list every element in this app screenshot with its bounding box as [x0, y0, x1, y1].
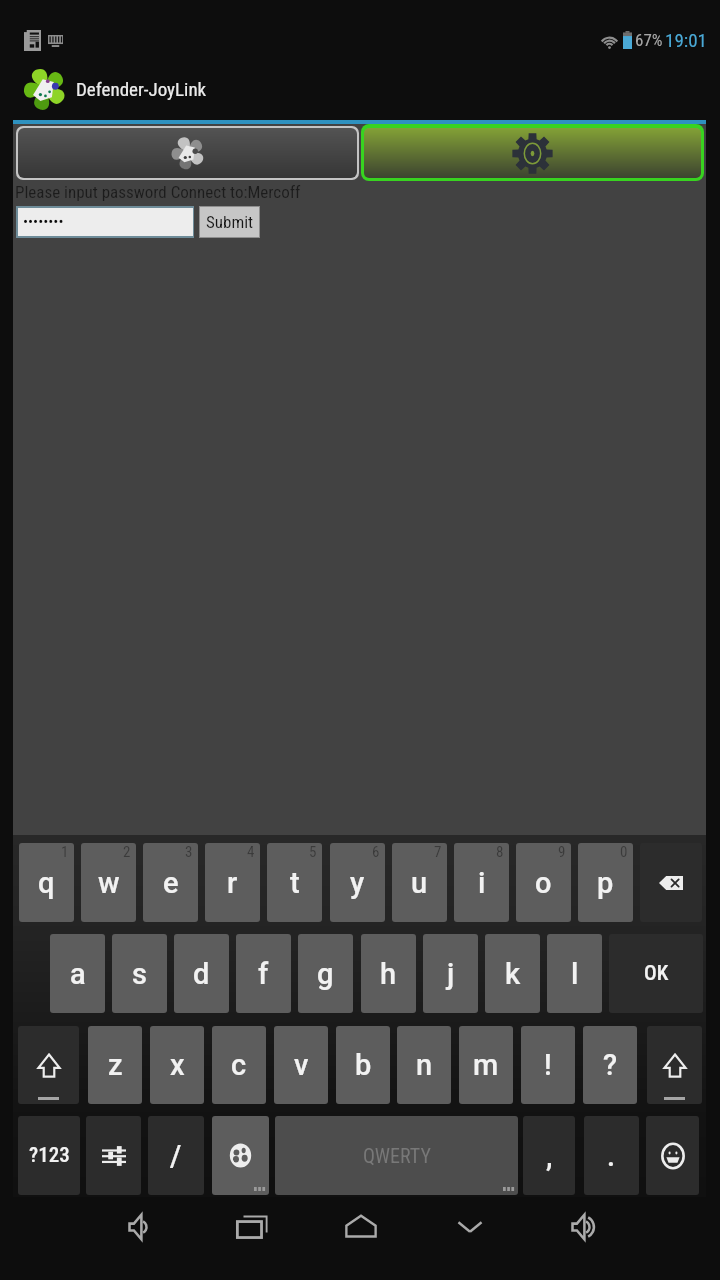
staticText: h — [380, 957, 397, 991]
button[interactable]: ? — [583, 1026, 637, 1104]
staticText: 67% — [635, 30, 663, 50]
button[interactable]: c — [212, 1026, 266, 1104]
button[interactable]: OK — [609, 934, 703, 1013]
button[interactable]: Change language — [212, 1116, 269, 1195]
staticText: t — [290, 866, 300, 900]
staticText: g — [317, 957, 334, 991]
staticText: l — [571, 957, 579, 991]
button[interactable]: q — [19, 843, 74, 922]
staticText: v — [294, 1048, 309, 1082]
button[interactable]: . — [584, 1116, 639, 1195]
staticText: r — [227, 866, 238, 900]
button[interactable]: Hide keyboard — [416, 1197, 524, 1263]
button[interactable]: d — [174, 934, 229, 1013]
staticText: , — [546, 1139, 553, 1173]
staticText: q — [38, 866, 55, 900]
button[interactable]: Recent apps — [198, 1197, 306, 1263]
staticText: QWERTY — [363, 1144, 431, 1167]
button[interactable]: p — [578, 843, 633, 922]
staticText: c — [231, 1048, 247, 1082]
button[interactable]: , — [523, 1116, 575, 1195]
button[interactable]: g — [298, 934, 353, 1013]
staticText: . — [607, 1139, 616, 1173]
staticText: Submit — [206, 212, 254, 232]
staticText: u — [411, 866, 428, 900]
button[interactable]: r — [205, 843, 260, 922]
staticText: ? — [603, 1048, 618, 1082]
button[interactable]: h — [361, 934, 416, 1013]
staticText: 19:01 — [665, 29, 707, 51]
button[interactable]: •••••••• — [18, 208, 193, 236]
staticText: p — [597, 866, 614, 900]
button[interactable]: w — [81, 843, 136, 922]
staticText: f — [258, 957, 269, 991]
staticText: m — [473, 1048, 499, 1082]
staticText: o — [535, 866, 552, 900]
button[interactable]: Device — [18, 128, 357, 178]
staticText: 7 — [434, 843, 442, 861]
button[interactable]: QWERTY — [275, 1116, 518, 1195]
staticText: x — [170, 1048, 185, 1082]
staticText: 2 — [123, 843, 131, 861]
button[interactable]: ! — [521, 1026, 575, 1104]
button[interactable]: f — [236, 934, 291, 1013]
staticText: 5 — [309, 843, 317, 861]
button[interactable]: i — [454, 843, 509, 922]
staticText: Defender-JoyLink — [76, 78, 207, 100]
staticText: b — [355, 1048, 372, 1082]
staticText: i — [478, 866, 486, 900]
button[interactable]: u — [392, 843, 447, 922]
button[interactable]: Input settings — [86, 1116, 141, 1195]
staticText: d — [193, 957, 210, 991]
button[interactable]: Submit — [200, 207, 259, 237]
button[interactable]: Volume down — [84, 1197, 192, 1263]
button[interactable]: Shift — [18, 1026, 79, 1104]
button[interactable]: j — [423, 934, 478, 1013]
staticText: w — [98, 866, 120, 900]
button[interactable]: / — [148, 1116, 204, 1195]
staticText: 8 — [496, 843, 504, 861]
staticText: y — [350, 866, 365, 900]
staticText: 4 — [247, 843, 255, 861]
button[interactable]: z — [88, 1026, 142, 1104]
staticText: 6 — [372, 843, 380, 861]
button[interactable]: Shift — [647, 1026, 702, 1104]
button[interactable]: s — [112, 934, 167, 1013]
button[interactable]: y — [330, 843, 385, 922]
button[interactable]: o — [516, 843, 571, 922]
staticText: •••••••• — [23, 213, 64, 231]
button[interactable]: Delete — [640, 843, 702, 922]
button[interactable]: ?123 — [18, 1116, 80, 1195]
button[interactable]: m — [459, 1026, 513, 1104]
staticText: 0 — [620, 843, 628, 861]
staticText: 1 — [61, 843, 69, 861]
staticText: 3 — [185, 843, 193, 861]
staticText: a — [70, 957, 86, 991]
button[interactable]: l — [547, 934, 602, 1013]
button[interactable]: Volume up — [527, 1197, 635, 1263]
staticText: ! — [544, 1048, 552, 1082]
staticText: Please input password Connect to:Mercoff — [15, 182, 301, 202]
staticText: e — [163, 866, 179, 900]
staticText: k — [505, 957, 521, 991]
button[interactable]: Emoji — [646, 1116, 699, 1195]
button[interactable]: e — [143, 843, 198, 922]
button[interactable]: Home — [307, 1197, 415, 1263]
button[interactable]: n — [397, 1026, 451, 1104]
staticText: ?123 — [29, 1143, 70, 1168]
staticText: s — [132, 957, 147, 991]
staticText: j — [447, 957, 455, 991]
staticText: / — [170, 1139, 182, 1173]
staticText: z — [108, 1048, 123, 1082]
button[interactable]: t — [267, 843, 322, 922]
button[interactable]: v — [274, 1026, 328, 1104]
staticText: n — [416, 1048, 433, 1082]
button[interactable]: b — [336, 1026, 390, 1104]
staticText: 9 — [558, 843, 566, 861]
button[interactable]: x — [150, 1026, 204, 1104]
staticText: OK — [644, 961, 669, 986]
button[interactable]: a — [50, 934, 105, 1013]
button[interactable]: Settings — [364, 128, 701, 178]
button[interactable]: k — [485, 934, 540, 1013]
